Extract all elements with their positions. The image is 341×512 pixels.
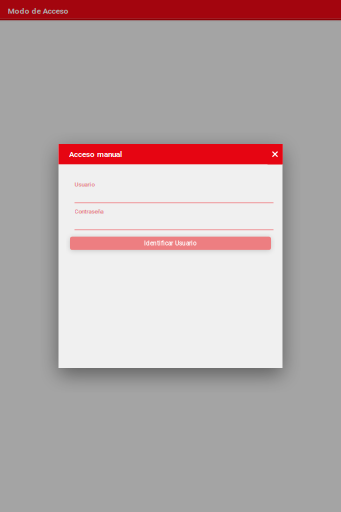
staticText: Usuario <box>74 181 94 188</box>
staticText: Modo de Acceso <box>8 6 69 16</box>
button[interactable]: Identificar Usuario <box>58 237 282 250</box>
button[interactable]: Contraseña <box>58 203 282 230</box>
staticText: Acceso manual <box>69 149 122 159</box>
button[interactable]: Cerrar <box>267 144 282 164</box>
staticText: Identificar Usuario <box>144 240 197 247</box>
button[interactable]: Usuario <box>58 176 282 203</box>
staticText: Contraseña <box>74 208 103 215</box>
